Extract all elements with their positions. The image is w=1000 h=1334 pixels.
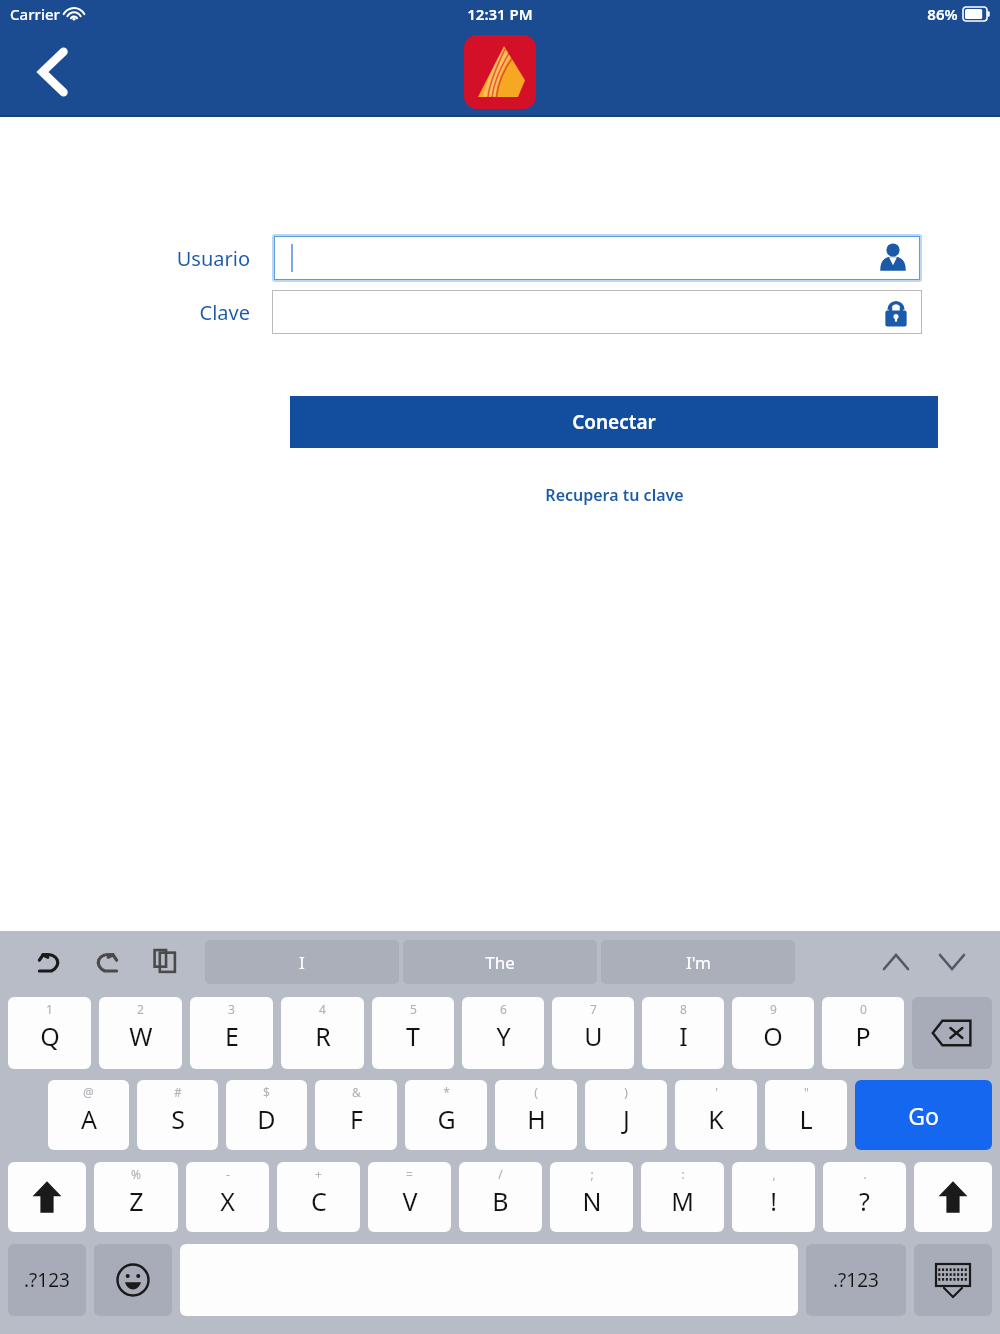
button[interactable]: 7: [552, 997, 634, 1069]
button[interactable]: :: [641, 1162, 724, 1232]
button[interactable]: Next: [930, 940, 974, 984]
button[interactable]: ,: [732, 1162, 815, 1232]
staticText: Go: [908, 1100, 939, 1131]
button[interactable]: %: [94, 1162, 178, 1232]
button[interactable]: Previous: [874, 940, 918, 984]
staticText: C: [311, 1184, 327, 1218]
button[interactable]: ;: [550, 1162, 633, 1232]
button[interactable]: Conectar: [290, 396, 938, 448]
staticText: 9: [770, 1001, 777, 1017]
staticText: ?: [859, 1184, 870, 1218]
staticText: B: [492, 1184, 509, 1218]
staticText: .: [863, 1166, 867, 1182]
button[interactable]: .: [823, 1162, 906, 1232]
button[interactable]: /: [459, 1162, 542, 1232]
staticText: .?123: [833, 1267, 879, 1293]
button[interactable]: $: [226, 1080, 307, 1150]
button[interactable]: Paste: [142, 939, 188, 985]
staticText: $: [263, 1084, 270, 1100]
staticText: -: [226, 1166, 230, 1182]
button[interactable]: Emoji: [94, 1244, 172, 1316]
button[interactable]: +: [277, 1162, 360, 1232]
staticText: %: [131, 1166, 141, 1182]
button[interactable]: 4: [281, 997, 364, 1069]
button[interactable]: -: [186, 1162, 269, 1232]
staticText: O: [763, 1019, 783, 1053]
staticText: T: [406, 1019, 420, 1053]
button[interactable]: ": [765, 1080, 847, 1150]
button[interactable]: [272, 290, 922, 334]
staticText: G: [437, 1102, 456, 1136]
button[interactable]: The: [403, 940, 597, 984]
staticText: /: [498, 1166, 503, 1182]
staticText: +: [315, 1166, 322, 1182]
staticText: .?123: [24, 1267, 70, 1293]
button[interactable]: 9: [732, 997, 814, 1069]
staticText: Recupera tu clave: [545, 484, 684, 506]
button[interactable]: Logo: [464, 35, 536, 109]
staticText: F: [350, 1102, 363, 1136]
staticText: 5: [410, 1001, 417, 1017]
button[interactable]: 0: [822, 997, 904, 1069]
staticText: 2: [137, 1001, 144, 1017]
button[interactable]: I'm: [601, 940, 795, 984]
button[interactable]: Redo: [84, 939, 130, 985]
staticText: (: [534, 1084, 538, 1100]
button[interactable]: 6: [462, 997, 544, 1069]
staticText: 4: [319, 1001, 326, 1017]
button[interactable]: ): [585, 1080, 667, 1150]
button[interactable]: Go: [855, 1080, 992, 1150]
button[interactable]: &: [315, 1080, 397, 1150]
button[interactable]: @: [48, 1080, 129, 1150]
staticText: ,: [772, 1166, 776, 1182]
staticText: 6: [500, 1001, 507, 1017]
button[interactable]: *: [405, 1080, 487, 1150]
staticText: 7: [590, 1001, 597, 1017]
staticText: *: [443, 1084, 450, 1100]
staticText: I'm: [686, 951, 711, 974]
staticText: S: [171, 1102, 185, 1136]
button[interactable]: (: [495, 1080, 577, 1150]
button[interactable]: Shift: [914, 1162, 992, 1232]
staticText: Y: [496, 1019, 511, 1053]
button[interactable]: ': [675, 1080, 757, 1150]
staticText: 0: [860, 1001, 867, 1017]
button[interactable]: Backspace: [912, 997, 992, 1069]
staticText: I: [679, 1019, 688, 1053]
button[interactable]: 8: [642, 997, 724, 1069]
staticText: Clave: [0, 299, 250, 326]
button[interactable]: Back: [18, 36, 90, 108]
button[interactable]: Hide keyboard: [914, 1244, 992, 1316]
button[interactable]: Shift: [8, 1162, 86, 1232]
button[interactable]: 2: [99, 997, 182, 1069]
button[interactable]: 3: [190, 997, 273, 1069]
staticText: M: [671, 1184, 694, 1218]
staticText: ": [804, 1084, 809, 1100]
button[interactable]: Undo: [26, 939, 72, 985]
staticText: =: [406, 1166, 413, 1182]
button[interactable]: 1: [8, 997, 91, 1069]
button[interactable]: 5: [372, 997, 454, 1069]
staticText: H: [527, 1102, 546, 1136]
button[interactable]: .?123: [8, 1244, 86, 1316]
staticText: A: [81, 1102, 97, 1136]
staticText: V: [402, 1184, 418, 1218]
button[interactable]: Recupera tu clave: [537, 480, 692, 510]
staticText: R: [315, 1019, 331, 1053]
staticText: N: [582, 1184, 602, 1218]
staticText: &: [352, 1084, 361, 1100]
staticText: E: [225, 1019, 239, 1053]
staticText: 3: [228, 1001, 235, 1017]
staticText: K: [708, 1102, 724, 1136]
button[interactable]: .?123: [806, 1244, 906, 1316]
staticText: ;: [590, 1166, 594, 1182]
staticText: U: [584, 1019, 603, 1053]
button[interactable]: I: [205, 940, 399, 984]
staticText: #: [174, 1084, 182, 1100]
button[interactable]: #: [137, 1080, 218, 1150]
button[interactable]: =: [368, 1162, 451, 1232]
staticText: Carrier: [10, 4, 60, 24]
button[interactable]: [272, 234, 922, 282]
staticText: D: [257, 1102, 276, 1136]
